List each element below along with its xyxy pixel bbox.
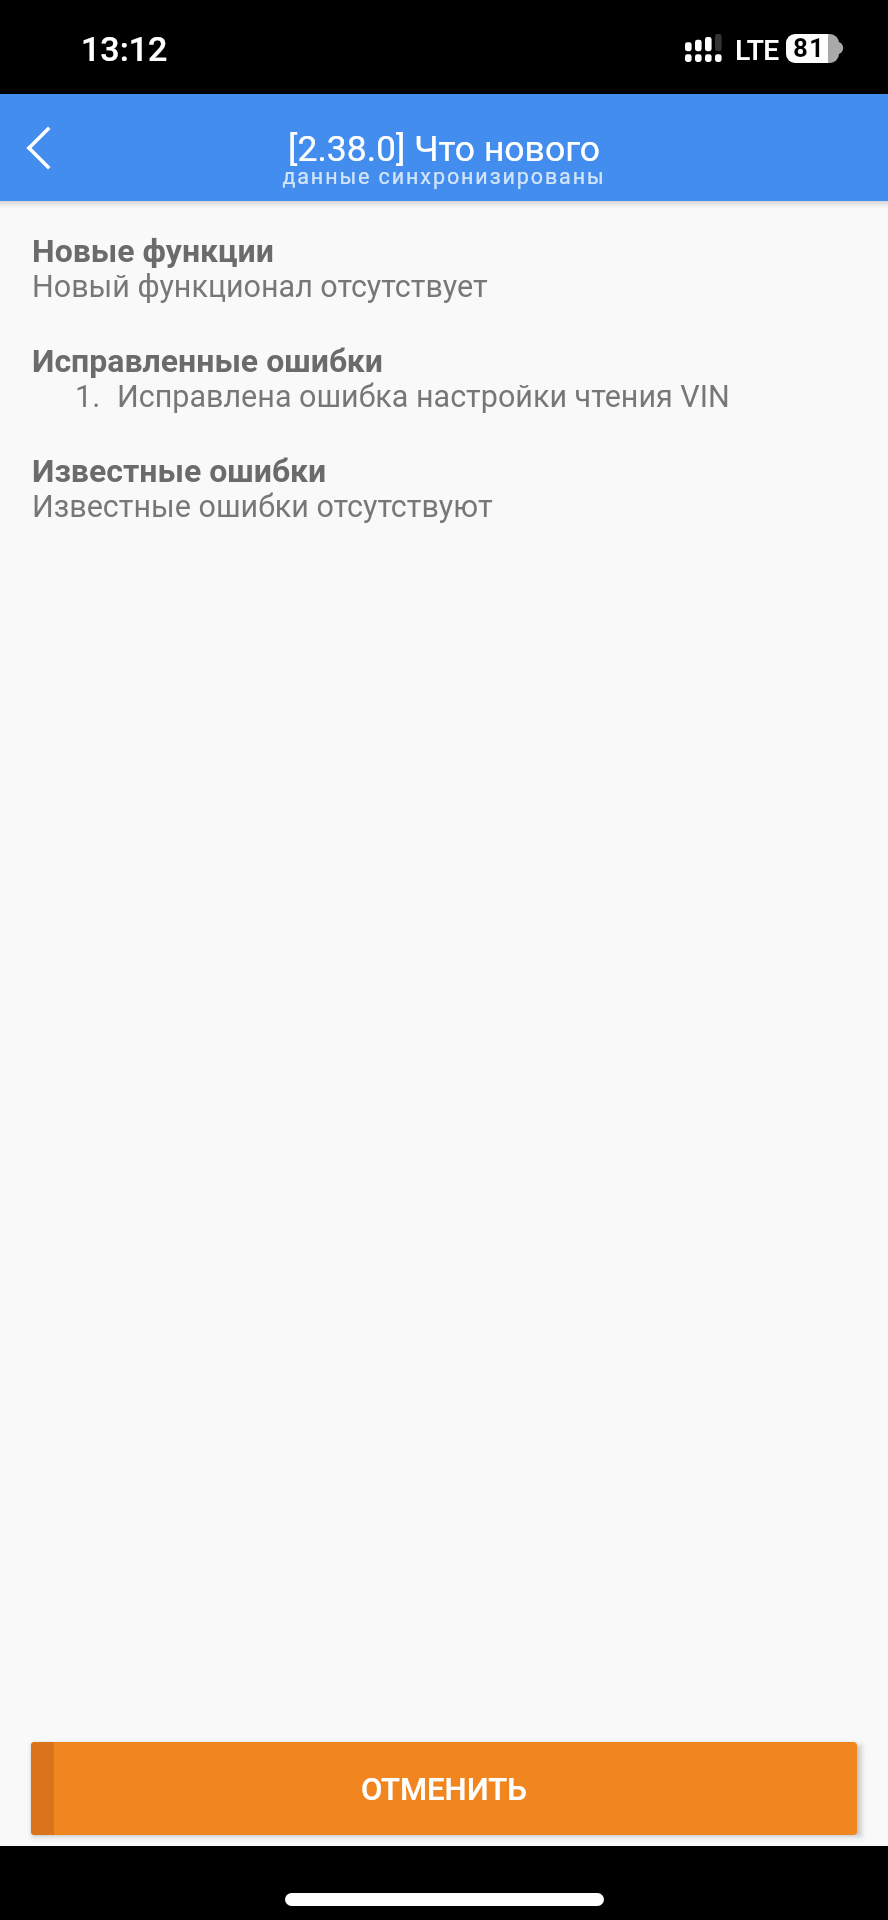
button[interactable]: ОТМЕНИТЬ	[31, 1742, 857, 1835]
staticText: данные синхронизированы	[0, 164, 888, 189]
staticText: 81	[793, 34, 826, 62]
staticText: ОТМЕНИТЬ	[361, 1771, 527, 1807]
staticText: [2.38.0] Что нового	[0, 128, 888, 170]
staticText: 1.	[75, 379, 101, 415]
staticText: Известные ошибки отсутствуют	[32, 489, 493, 525]
staticText: Исправлена ошибка настройки чтения VIN	[117, 379, 730, 415]
staticText: Исправленные ошибки	[32, 342, 384, 380]
staticText: Новые функции	[32, 232, 274, 270]
button[interactable]: Back	[0, 102, 84, 194]
staticText: LTE	[735, 34, 779, 67]
staticText: Новый функционал отсутствует	[32, 269, 488, 305]
staticText: 13:12	[81, 29, 168, 69]
staticText: Известные ошибки	[32, 452, 327, 490]
